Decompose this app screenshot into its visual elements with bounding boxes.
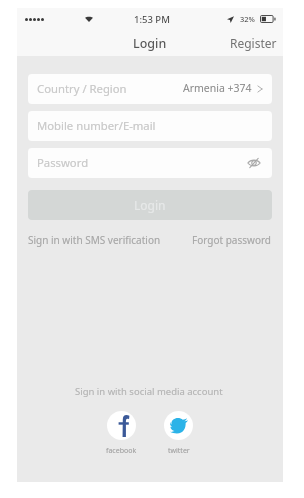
staticText: Login	[133, 35, 167, 52]
staticText: Sign in with SMS verification	[28, 233, 161, 247]
button[interactable]: Register	[224, 30, 283, 56]
button[interactable]: Mobile number/E-mail	[28, 111, 272, 141]
staticText: 1:53 PM	[134, 13, 170, 26]
staticText: Country / Region	[37, 81, 127, 96]
staticText: Login	[134, 197, 166, 213]
button[interactable]: Country / Region	[28, 74, 272, 104]
button[interactable]: twitter	[164, 411, 193, 456]
staticText: 32%	[240, 14, 255, 24]
button[interactable]: Forgot password	[192, 233, 272, 247]
button[interactable]: Password	[28, 148, 272, 178]
staticText: Mobile number/E-mail	[37, 118, 156, 133]
staticText: Forgot password	[192, 233, 272, 247]
staticText: twitter	[168, 446, 190, 456]
staticText: Sign in with social media account	[75, 385, 223, 398]
staticText: Armenia +374	[183, 81, 252, 95]
button[interactable]: Sign in with SMS verification	[28, 233, 161, 247]
staticText: Password	[37, 155, 89, 170]
staticText: facebook	[106, 446, 137, 456]
button[interactable]: facebook	[106, 411, 137, 456]
button[interactable]: Show password	[247, 157, 261, 169]
staticText: Register	[230, 35, 277, 51]
